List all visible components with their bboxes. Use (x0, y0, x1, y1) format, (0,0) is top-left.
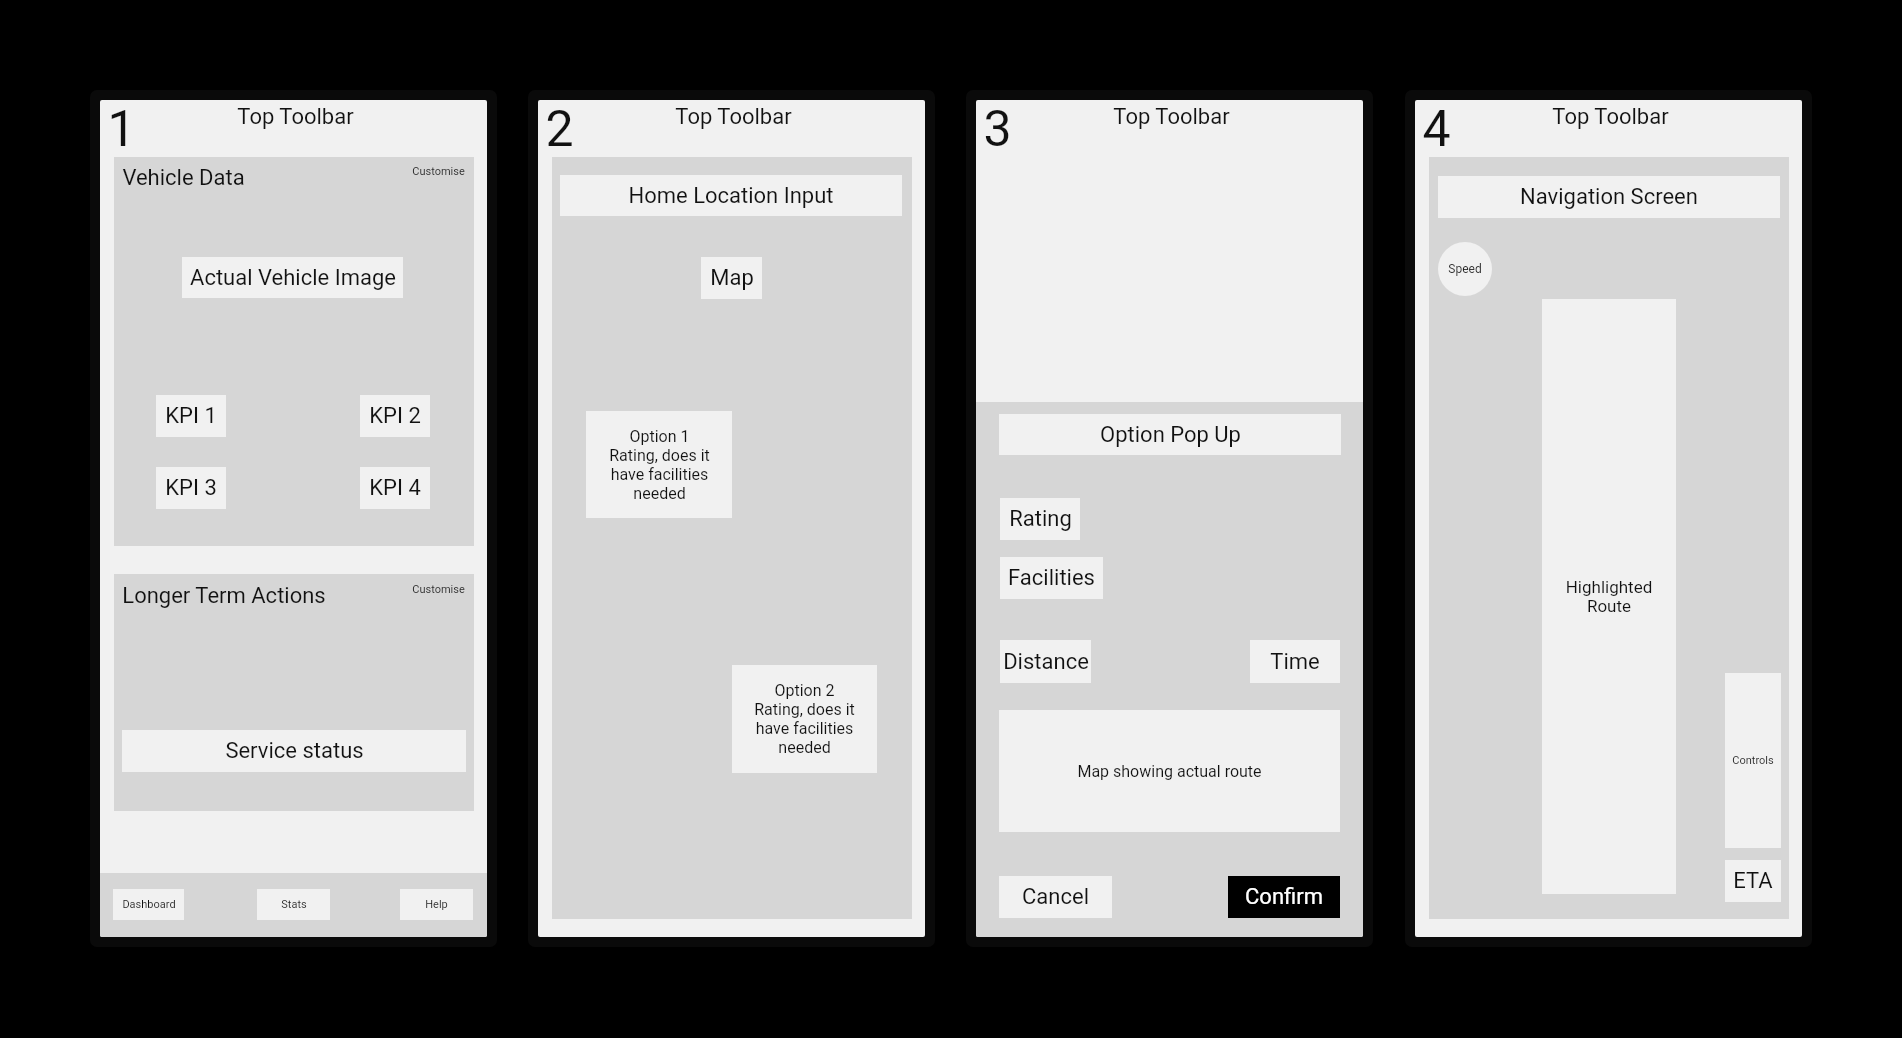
button[interactable]: Facilities (1000, 557, 1103, 599)
staticText: Dashboard (122, 898, 176, 911)
staticText: Facilities (1008, 565, 1095, 591)
staticText: Speed (1448, 262, 1482, 276)
button[interactable]: Cancel (999, 876, 1112, 918)
button[interactable]: Controls (1725, 673, 1781, 848)
staticText: Confirm (1245, 884, 1323, 910)
button[interactable]: KPI 4 (360, 467, 430, 509)
staticText: Map (710, 265, 754, 291)
button[interactable]: Service status (122, 730, 466, 772)
button[interactable]: Top Toolbar (976, 100, 1363, 157)
button[interactable]: ETA (1725, 860, 1781, 902)
staticText: Rating (1009, 506, 1072, 532)
button[interactable]: Customise (410, 162, 466, 180)
button[interactable]: KPI 1 (156, 395, 226, 437)
button[interactable]: Top Toolbar (1415, 100, 1802, 157)
button[interactable]: Distance (1000, 640, 1091, 683)
button[interactable]: Navigation Screen (1438, 176, 1780, 218)
button[interactable]: Highlighted Route (1542, 299, 1676, 894)
button[interactable]: Actual Vehicle Image (182, 257, 403, 298)
button[interactable]: Option Pop Up (999, 414, 1341, 455)
button[interactable]: Customise (410, 580, 466, 598)
staticText: Top Toolbar (237, 104, 354, 130)
button[interactable]: Top Toolbar (538, 100, 925, 157)
staticText: KPI 1 (165, 403, 217, 429)
staticText: Longer Term Actions (122, 583, 326, 609)
staticText: Navigation Screen (1520, 184, 1698, 210)
button[interactable]: Time (1250, 640, 1340, 683)
button[interactable]: Rating (1000, 498, 1080, 540)
staticText: ETA (1733, 868, 1773, 894)
staticText: Top Toolbar (1552, 104, 1669, 130)
button[interactable]: KPI 2 (360, 395, 430, 437)
staticText: Highlighted Route (1542, 577, 1676, 616)
button[interactable]: KPI 3 (156, 467, 226, 509)
staticText: Top Toolbar (1113, 104, 1230, 130)
staticText: KPI 4 (369, 475, 421, 501)
button[interactable]: Speed (1438, 242, 1492, 296)
staticText: Home Location Input (628, 183, 834, 209)
staticText: 1 (107, 100, 136, 157)
button[interactable]: Map (701, 257, 762, 299)
staticText: Map showing actual route (1077, 762, 1262, 781)
button[interactable]: Map showing actual route (999, 710, 1340, 832)
staticText: Option 2 Rating, does it have facilities… (754, 681, 855, 757)
staticText: Time (1270, 649, 1320, 675)
staticText: 3 (983, 100, 1012, 157)
staticText: 2 (545, 100, 574, 157)
staticText: Customise (412, 165, 465, 178)
button[interactable]: Help (400, 889, 473, 920)
button[interactable]: Confirm (1228, 876, 1340, 918)
staticText: Controls (1732, 754, 1774, 767)
staticText: Actual Vehicle Image (190, 265, 396, 291)
staticText: Customise (412, 583, 465, 596)
staticText: Top Toolbar (675, 104, 792, 130)
staticText: Distance (1003, 649, 1089, 675)
staticText: Cancel (1022, 884, 1089, 910)
button[interactable]: Top Toolbar (100, 100, 487, 157)
staticText: Option Pop Up (1100, 422, 1241, 448)
button[interactable]: Stats (257, 889, 330, 920)
staticText: KPI 2 (369, 403, 421, 429)
staticText: 4 (1422, 100, 1451, 157)
staticText: Stats (281, 898, 307, 911)
button[interactable]: Home Location Input (560, 175, 902, 216)
staticText: Service status (225, 738, 364, 764)
button[interactable]: Option 1 Rating, does it have facilities… (586, 411, 732, 518)
button[interactable]: Option 2 Rating, does it have facilities… (732, 665, 877, 773)
staticText: Option 1 Rating, does it have facilities… (609, 427, 710, 503)
button[interactable]: Dashboard (113, 889, 184, 920)
staticText: KPI 3 (165, 475, 217, 501)
staticText: Vehicle Data (122, 165, 245, 191)
staticText: Help (425, 898, 448, 911)
